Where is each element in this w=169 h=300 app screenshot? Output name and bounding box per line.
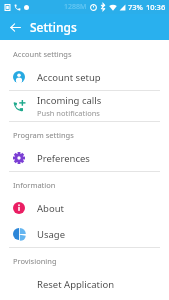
staticText: Program settings bbox=[13, 130, 74, 140]
staticText: Information bbox=[13, 180, 56, 190]
button[interactable]: Incoming calls bbox=[0, 91, 169, 121]
button[interactable]: About bbox=[0, 195, 169, 221]
staticText: Account settings bbox=[13, 49, 72, 59]
button[interactable]: Preferences bbox=[0, 145, 169, 171]
staticText: 1288M bbox=[64, 2, 87, 12]
staticText: Settings bbox=[30, 19, 77, 35]
button[interactable]: Account setup bbox=[0, 64, 169, 90]
button[interactable]: Back bbox=[5, 17, 25, 37]
button[interactable]: Usage bbox=[0, 221, 169, 247]
staticText: Provisioning bbox=[13, 256, 57, 266]
button[interactable]: Reset Application bbox=[0, 271, 169, 297]
staticText: Usage bbox=[37, 228, 66, 241]
staticText: Account setup bbox=[37, 71, 101, 84]
staticText: 73% bbox=[128, 2, 143, 12]
staticText: Push notifications bbox=[37, 108, 100, 118]
staticText: Preferences bbox=[37, 152, 90, 165]
staticText: 10:36 bbox=[146, 2, 166, 12]
staticText: Reset Application bbox=[37, 278, 115, 291]
staticText: About bbox=[37, 202, 64, 215]
staticText: Incoming calls bbox=[37, 94, 102, 107]
